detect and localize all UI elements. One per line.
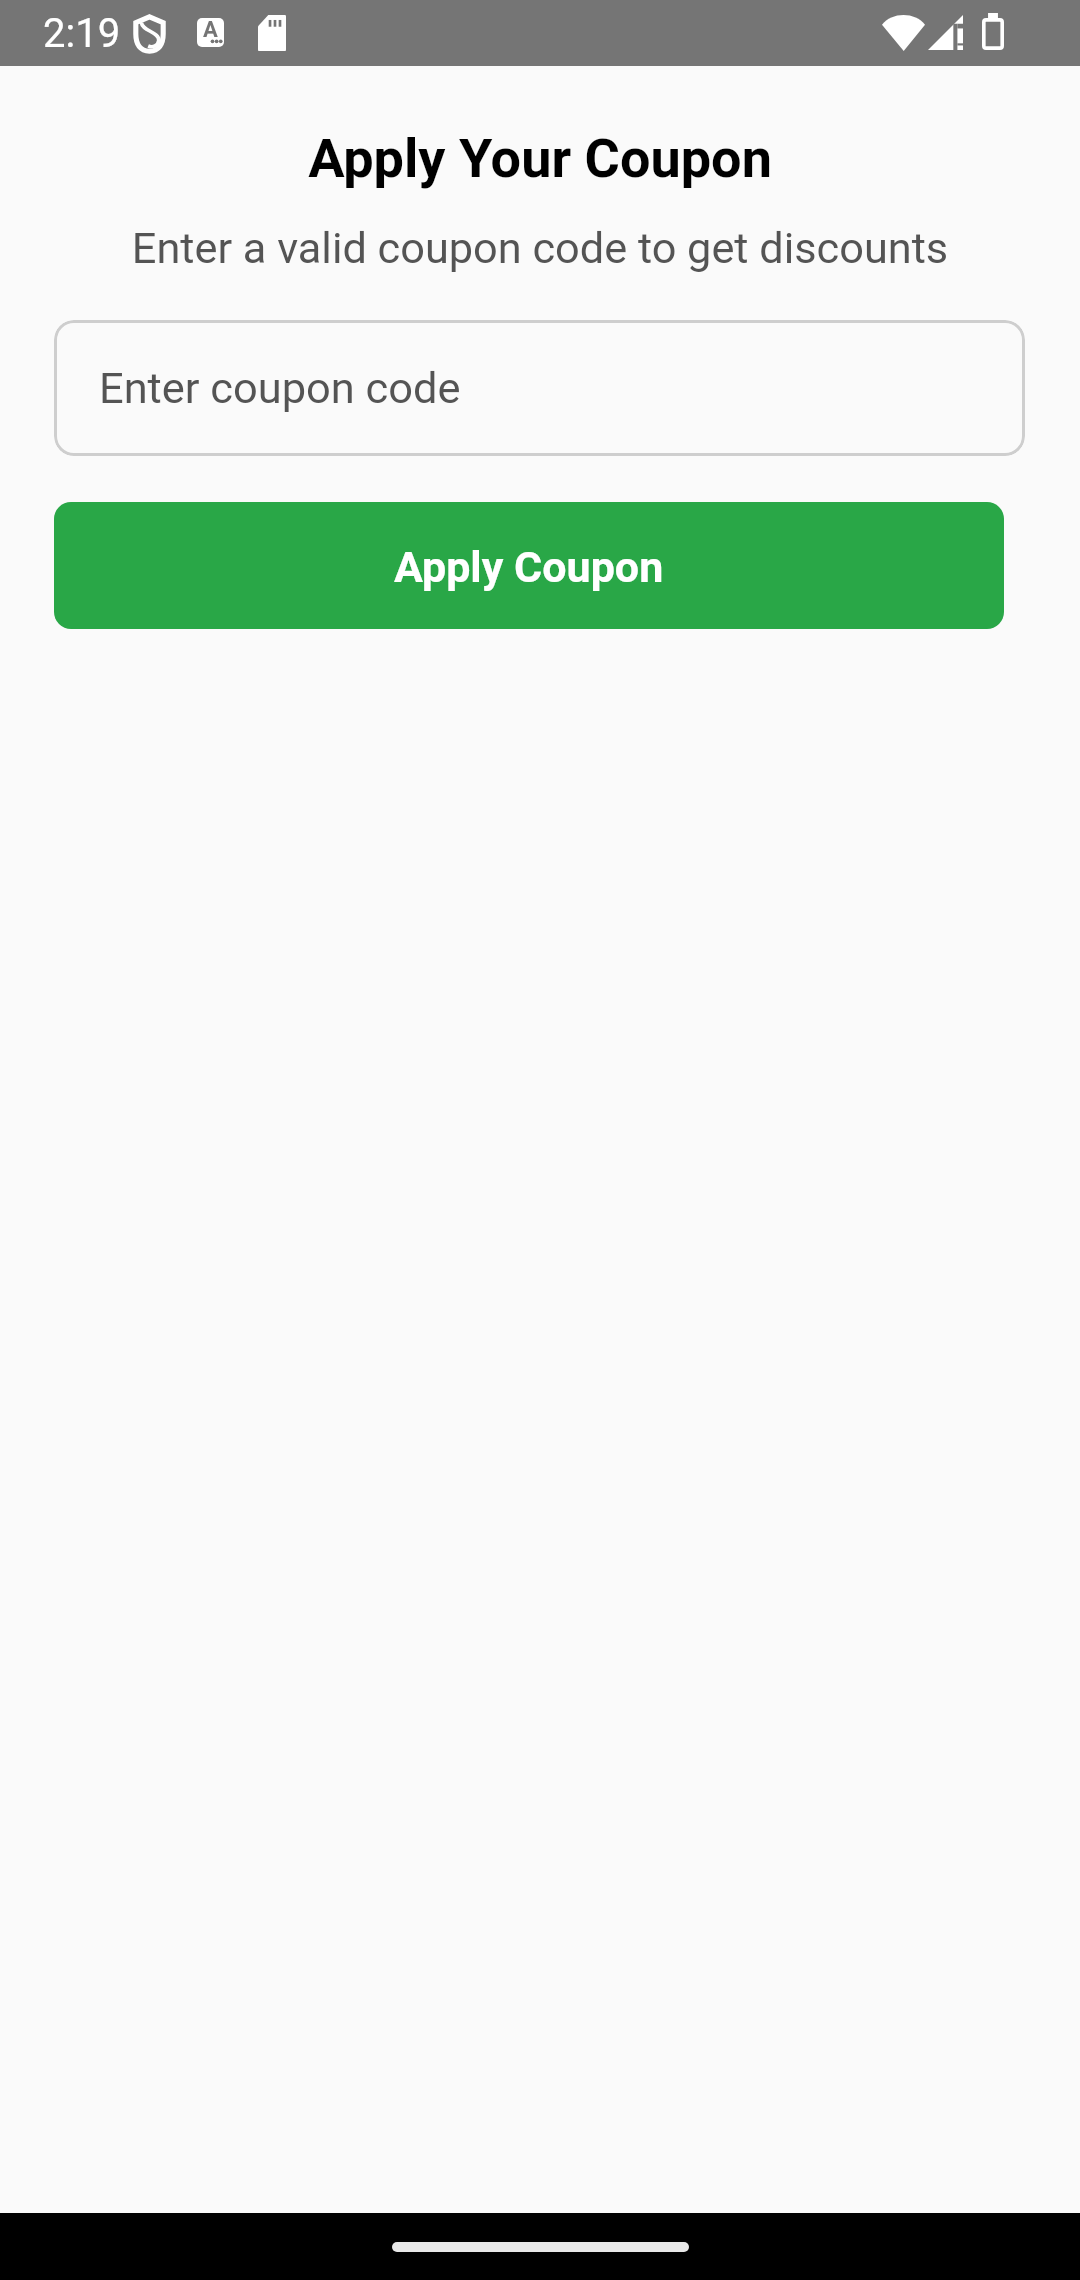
staticText: 2:19 (43, 10, 121, 57)
button[interactable]: Enter coupon code (54, 320, 1025, 456)
other: Home (392, 2242, 689, 2252)
staticText: Enter coupon code (99, 363, 461, 414)
staticText: Apply Coupon (394, 542, 664, 592)
button[interactable]: Apply Coupon (54, 502, 1004, 629)
staticText: A (203, 18, 218, 43)
staticText: Enter a valid coupon code to get discoun… (0, 223, 1080, 274)
staticText: Apply Your Coupon (0, 127, 1080, 190)
